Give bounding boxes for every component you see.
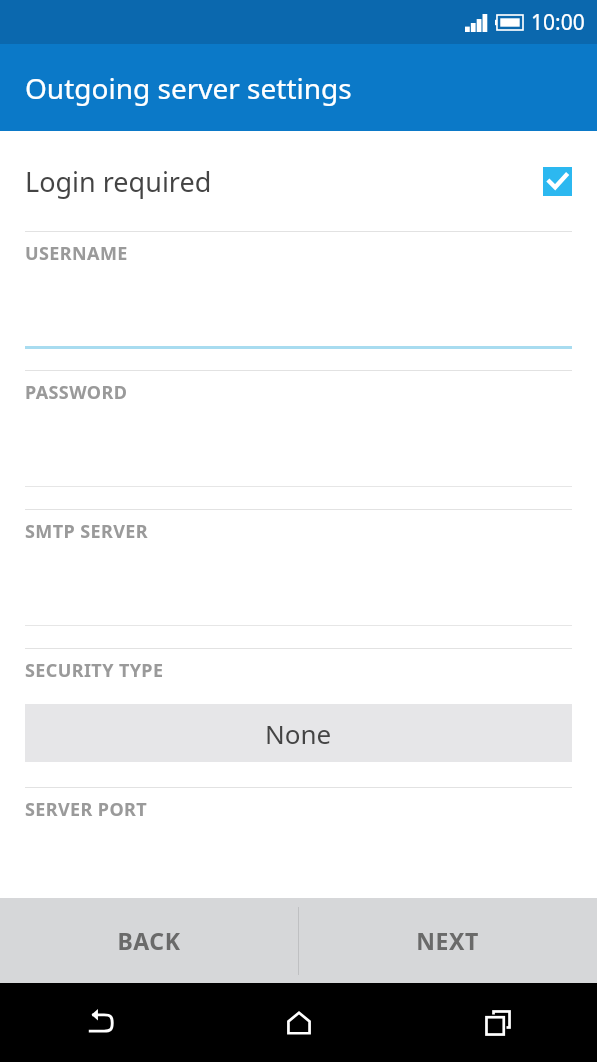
button[interactable]: Login required — [0, 131, 597, 231]
button[interactable]: BACK — [0, 898, 298, 983]
staticText: PASSWORD — [25, 380, 128, 405]
staticText: SMTP SERVER — [25, 519, 148, 544]
staticText: 10:00 — [531, 8, 585, 37]
button[interactable]: None — [25, 704, 572, 762]
button[interactable]: Home — [199, 983, 398, 1062]
staticText: None — [265, 716, 332, 751]
staticText: USERNAME — [25, 241, 128, 266]
staticText: SERVER PORT — [25, 797, 148, 822]
staticText: Outgoing server settings — [25, 69, 352, 107]
staticText: SECURITY TYPE — [25, 658, 164, 683]
staticText: Login required — [25, 163, 543, 200]
button[interactable]: Recent apps — [398, 983, 597, 1062]
button[interactable]: Back — [0, 983, 199, 1062]
staticText: NEXT — [416, 925, 479, 956]
button[interactable]: NEXT — [298, 898, 597, 983]
staticText: BACK — [117, 925, 181, 956]
button[interactable]: Login required checkbox — [543, 167, 572, 196]
